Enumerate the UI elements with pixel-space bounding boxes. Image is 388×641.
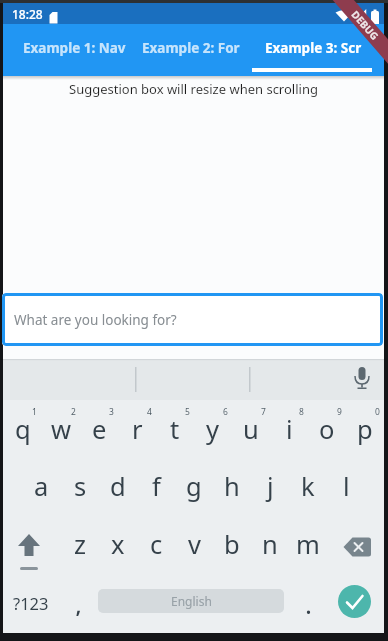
button[interactable]: Example 1: Nav bbox=[3, 24, 130, 76]
staticText: 2 bbox=[71, 406, 76, 418]
staticText: j bbox=[267, 469, 274, 504]
staticText: 0 bbox=[375, 406, 380, 418]
button[interactable]: a bbox=[22, 458, 61, 515]
staticText: 3 bbox=[109, 406, 114, 418]
staticText: i bbox=[286, 412, 293, 447]
staticText: n bbox=[262, 527, 278, 562]
staticText: d bbox=[110, 469, 126, 504]
button[interactable]: . bbox=[291, 586, 325, 616]
staticText: 7 bbox=[261, 406, 266, 418]
staticText: Example 1: Nav bbox=[23, 39, 126, 57]
button[interactable]: v bbox=[175, 515, 213, 573]
staticText: o bbox=[319, 412, 335, 447]
staticText: p bbox=[357, 412, 373, 447]
staticText: b bbox=[224, 527, 240, 562]
button[interactable]: m bbox=[289, 515, 327, 573]
staticText: 5 bbox=[185, 406, 190, 418]
button[interactable]: u bbox=[232, 400, 270, 458]
button[interactable]: q bbox=[3, 400, 42, 458]
button[interactable]: y bbox=[194, 400, 232, 458]
button[interactable]: p bbox=[346, 400, 384, 458]
staticText: Example 3: Scr bbox=[265, 39, 362, 57]
staticText: t bbox=[170, 412, 180, 447]
staticText: z bbox=[74, 527, 86, 562]
staticText: DEBUG bbox=[349, 8, 382, 43]
staticText: s bbox=[74, 469, 87, 504]
staticText: f bbox=[152, 469, 161, 504]
staticText: What are you looking for? bbox=[14, 311, 177, 329]
staticText: Example 2: For bbox=[142, 39, 240, 57]
staticText: 4 bbox=[147, 406, 152, 418]
button[interactable]: o bbox=[308, 400, 346, 458]
button[interactable]: s bbox=[61, 458, 99, 515]
button[interactable]: e bbox=[80, 400, 118, 458]
button[interactable]: d bbox=[99, 458, 137, 515]
button[interactable]: b bbox=[213, 515, 251, 573]
button[interactable]: ?123 bbox=[9, 591, 53, 615]
staticText: 8 bbox=[299, 406, 304, 418]
staticText: w bbox=[51, 412, 72, 447]
staticText: c bbox=[150, 527, 163, 562]
button[interactable]: w bbox=[42, 400, 80, 458]
button[interactable]: k bbox=[289, 458, 327, 515]
staticText: Suggestion box will resize when scrollin… bbox=[69, 80, 318, 98]
staticText: e bbox=[92, 412, 107, 447]
button[interactable]: f bbox=[137, 458, 175, 515]
button[interactable]: c bbox=[137, 515, 175, 573]
staticText: 6 bbox=[223, 406, 228, 418]
button[interactable]: English bbox=[98, 589, 284, 613]
staticText: 1 bbox=[32, 406, 37, 418]
staticText: a bbox=[34, 469, 49, 504]
staticText: g bbox=[186, 469, 202, 504]
button[interactable]: g bbox=[175, 458, 213, 515]
staticText: m bbox=[296, 527, 320, 562]
staticText: v bbox=[188, 527, 201, 562]
button[interactable]: j bbox=[251, 458, 289, 515]
staticText: k bbox=[301, 469, 315, 504]
button[interactable]: i bbox=[270, 400, 308, 458]
staticText: r bbox=[132, 412, 143, 447]
button[interactable]: r bbox=[118, 400, 156, 458]
button[interactable]: Example 3: Scr bbox=[257, 24, 384, 76]
staticText: . bbox=[305, 586, 312, 616]
staticText: ?123 bbox=[13, 592, 49, 614]
button[interactable]: h bbox=[213, 458, 251, 515]
staticText: , bbox=[75, 586, 82, 616]
staticText: x bbox=[111, 527, 125, 562]
staticText: u bbox=[243, 412, 259, 447]
button[interactable] bbox=[3, 515, 61, 573]
button[interactable]: x bbox=[99, 515, 137, 573]
button[interactable]: t bbox=[156, 400, 194, 458]
staticText: l bbox=[343, 469, 350, 504]
button[interactable]: Example 2: For bbox=[130, 24, 257, 76]
button[interactable]: z bbox=[61, 515, 99, 573]
staticText: 18:28 bbox=[12, 6, 43, 22]
button[interactable]: What are you looking for? bbox=[2, 293, 383, 346]
button[interactable] bbox=[338, 585, 371, 618]
staticText: English bbox=[171, 593, 212, 609]
staticText: q bbox=[15, 412, 31, 447]
staticText: y bbox=[206, 412, 220, 447]
staticText: h bbox=[224, 469, 240, 504]
staticText: 9 bbox=[337, 406, 342, 418]
button[interactable]: , bbox=[61, 586, 95, 616]
button[interactable]: n bbox=[251, 515, 289, 573]
button[interactable] bbox=[327, 515, 384, 573]
button[interactable]: l bbox=[327, 458, 365, 515]
